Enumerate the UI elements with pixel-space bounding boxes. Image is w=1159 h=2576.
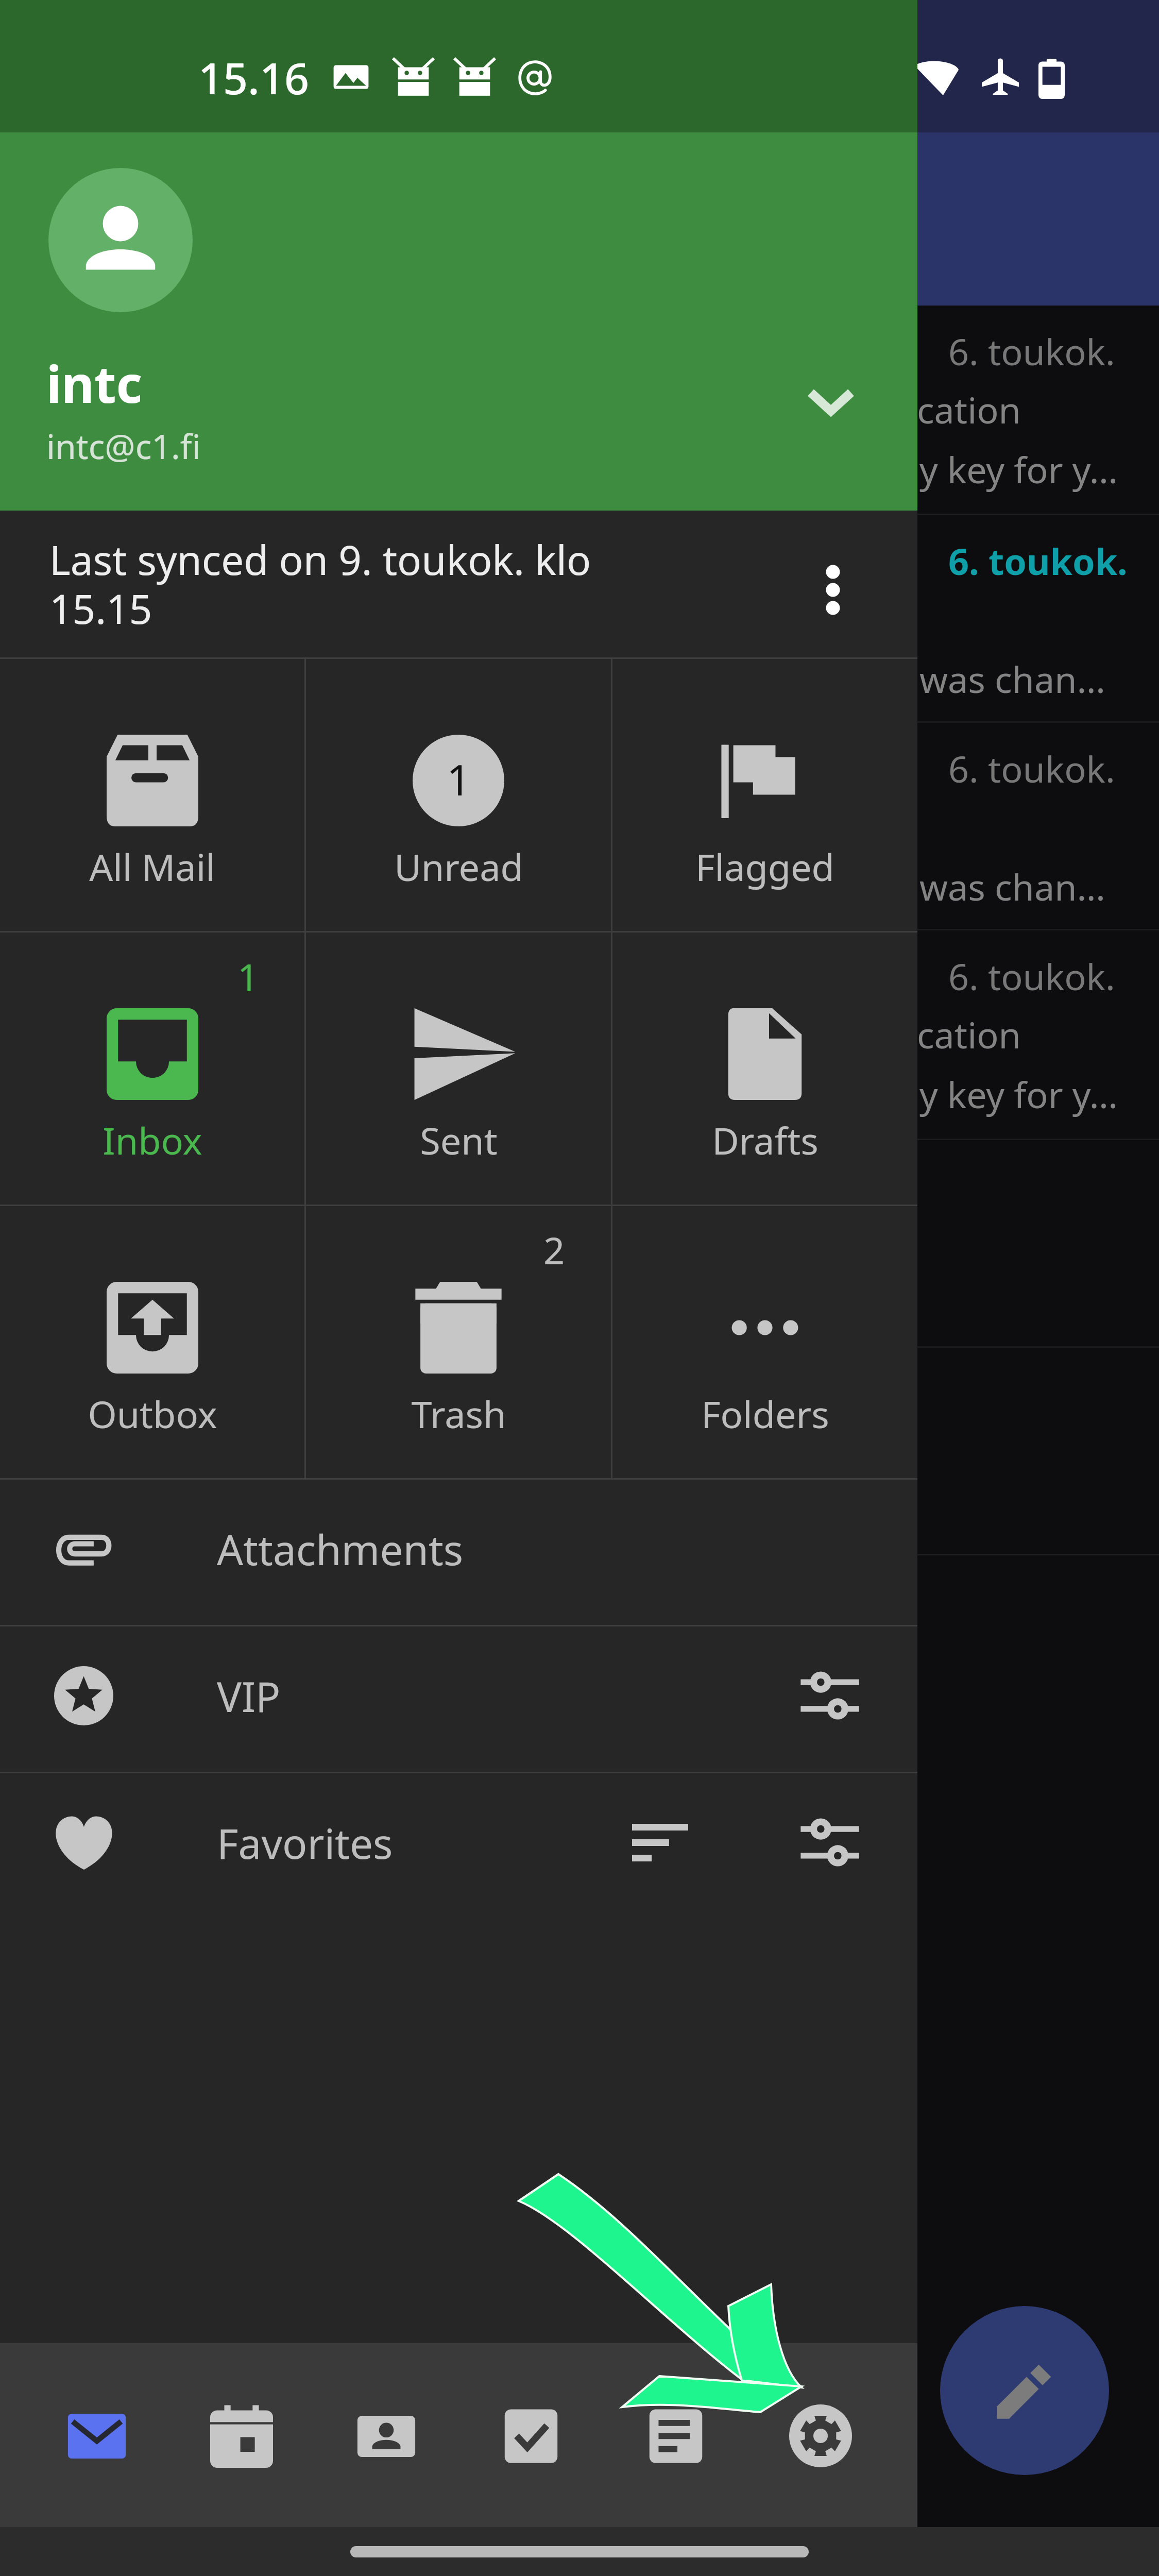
staticText: Trash <box>411 1388 506 1439</box>
button[interactable]: Notes <box>604 2369 748 2503</box>
staticText: All Mail <box>89 841 215 892</box>
staticText: Attachments <box>217 1521 464 1577</box>
staticText: intc <box>46 349 143 417</box>
staticText: VIP <box>217 1668 281 1724</box>
button[interactable]: Flagged <box>612 659 917 931</box>
staticText: cation <box>917 385 1021 434</box>
button[interactable]: Filter VIP <box>789 1654 871 1737</box>
staticText: Last synced on 9. toukok. klo 15.15 <box>49 532 642 636</box>
button[interactable]: intc <box>0 132 917 511</box>
staticText: Inbox <box>103 1115 202 1165</box>
staticText: 15.16 <box>198 48 310 107</box>
button[interactable]: Trash <box>306 1206 611 1478</box>
button[interactable]: Switch account <box>782 355 880 453</box>
button[interactable]: Outbox <box>0 1206 304 1478</box>
staticText: 6. toukok. <box>948 327 1115 376</box>
staticText: 6. toukok. <box>948 744 1115 793</box>
staticText: 6. toukok. <box>948 536 1128 585</box>
button[interactable]: Sent <box>306 933 611 1205</box>
button[interactable]: Calendar <box>169 2369 314 2503</box>
staticText: Favorites <box>217 1815 393 1871</box>
staticText: Drafts <box>712 1115 819 1165</box>
staticText: 1 <box>447 750 471 808</box>
button[interactable]: Compose <box>940 2306 1109 2475</box>
button[interactable]: Tasks <box>459 2369 603 2503</box>
button[interactable]: Favorites <box>0 1773 917 1919</box>
button[interactable]: Settings <box>748 2369 893 2503</box>
button[interactable]: VIP <box>0 1626 917 1772</box>
staticText: intc@c1.fi <box>46 422 201 469</box>
button[interactable]: All Mail <box>0 659 304 931</box>
button[interactable]: Mail <box>25 2369 169 2503</box>
staticText: Flagged <box>695 841 834 892</box>
button[interactable]: Contacts <box>314 2369 458 2503</box>
staticText: Outbox <box>88 1388 217 1439</box>
staticText: y key for y… <box>919 1070 1118 1118</box>
button[interactable]: Inbox <box>0 933 304 1205</box>
button[interactable]: Filter favorites <box>789 1801 871 1884</box>
staticText: y key for y… <box>919 445 1118 494</box>
button[interactable]: Sort favorites <box>619 1801 701 1884</box>
button[interactable]: Folders <box>612 1206 917 1478</box>
staticText: was chan… <box>919 862 1105 911</box>
staticText: 2 <box>543 1225 565 1275</box>
staticText: Sent <box>420 1115 498 1165</box>
staticText: 1 <box>237 951 259 1002</box>
button[interactable]: Attachments <box>0 1480 917 1625</box>
button[interactable]: Last synced on 9. toukok. klo 15.15 <box>0 511 917 657</box>
button[interactable]: 1 <box>306 659 611 931</box>
button[interactable]: More options <box>797 554 869 626</box>
staticText: was chan… <box>919 654 1105 703</box>
staticText: cation <box>917 1010 1021 1059</box>
staticText: 6. toukok. <box>948 952 1115 1001</box>
button[interactable]: Drafts <box>612 933 917 1205</box>
staticText: Unread <box>394 841 523 892</box>
staticText: Folders <box>701 1388 829 1439</box>
